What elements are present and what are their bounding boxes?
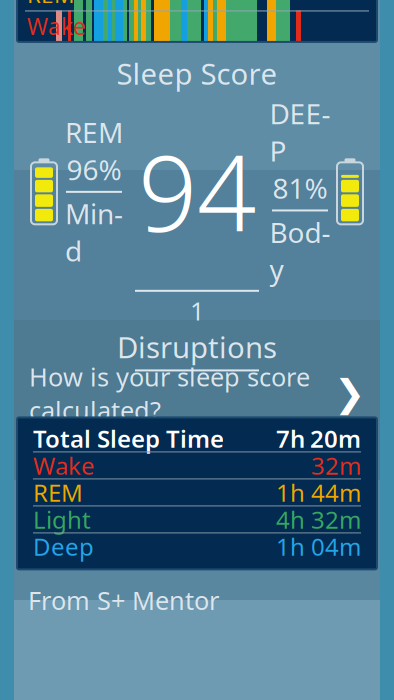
staticText: Disruptions — [117, 327, 277, 366]
staticText: Light — [33, 503, 91, 535]
staticText: 4h — [276, 503, 305, 535]
button[interactable]: How is your sleep score calculated? — [17, 373, 377, 413]
staticText: 96% — [66, 151, 121, 188]
staticText: 1h — [276, 476, 305, 508]
staticText: 20m — [310, 422, 361, 454]
staticText: REM — [65, 113, 123, 151]
staticText: Deep — [33, 530, 94, 562]
staticText: 81% — [272, 169, 327, 206]
staticText: ❯ — [334, 372, 365, 415]
staticText: 1 — [190, 294, 204, 327]
staticText: 7h — [276, 422, 305, 454]
staticText: From S+ Mentor — [28, 583, 219, 617]
staticText: Wake — [33, 449, 95, 481]
staticText: Total Sleep Time — [33, 422, 224, 454]
staticText: 44m — [311, 476, 361, 508]
staticText: 1h — [276, 530, 305, 562]
staticText: 94 — [138, 122, 256, 260]
staticText: Body — [269, 213, 330, 288]
staticText: DEEP — [269, 95, 330, 169]
staticText: 32m — [311, 503, 361, 535]
staticText: How is your sleep score calculated? — [29, 360, 310, 427]
staticText: Mind — [65, 195, 123, 269]
staticText: REM — [33, 476, 83, 508]
staticText: Wake — [27, 11, 86, 41]
staticText: 32m — [311, 449, 361, 481]
staticText: Sleep Score — [116, 54, 277, 93]
staticText: 04m — [311, 530, 361, 562]
staticText: REM — [27, 0, 75, 10]
